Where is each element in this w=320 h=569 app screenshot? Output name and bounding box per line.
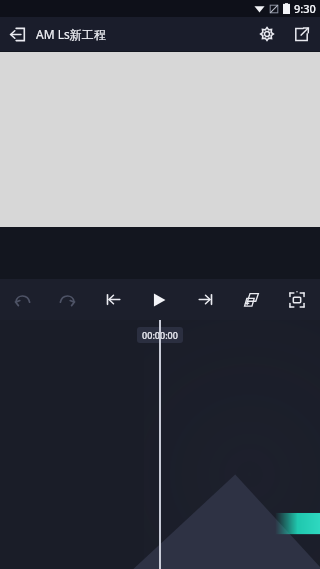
- button[interactable]: Undo: [0, 279, 45, 320]
- button[interactable]: Play: [136, 279, 182, 320]
- button[interactable]: Crop: [274, 279, 320, 320]
- button[interactable]: Settings: [250, 17, 284, 51]
- staticText: 00:00:00: [142, 329, 178, 341]
- button[interactable]: Redo: [45, 279, 90, 320]
- staticText: 9:30: [294, 1, 316, 16]
- button[interactable]: Back: [0, 17, 34, 51]
- button[interactable]: Duplicate: [228, 279, 274, 320]
- button[interactable]: Jump to start: [90, 279, 136, 320]
- button[interactable]: Export: [284, 17, 318, 51]
- staticText: AM Ls新工程: [36, 26, 106, 42]
- button[interactable]: Jump to end: [182, 279, 228, 320]
